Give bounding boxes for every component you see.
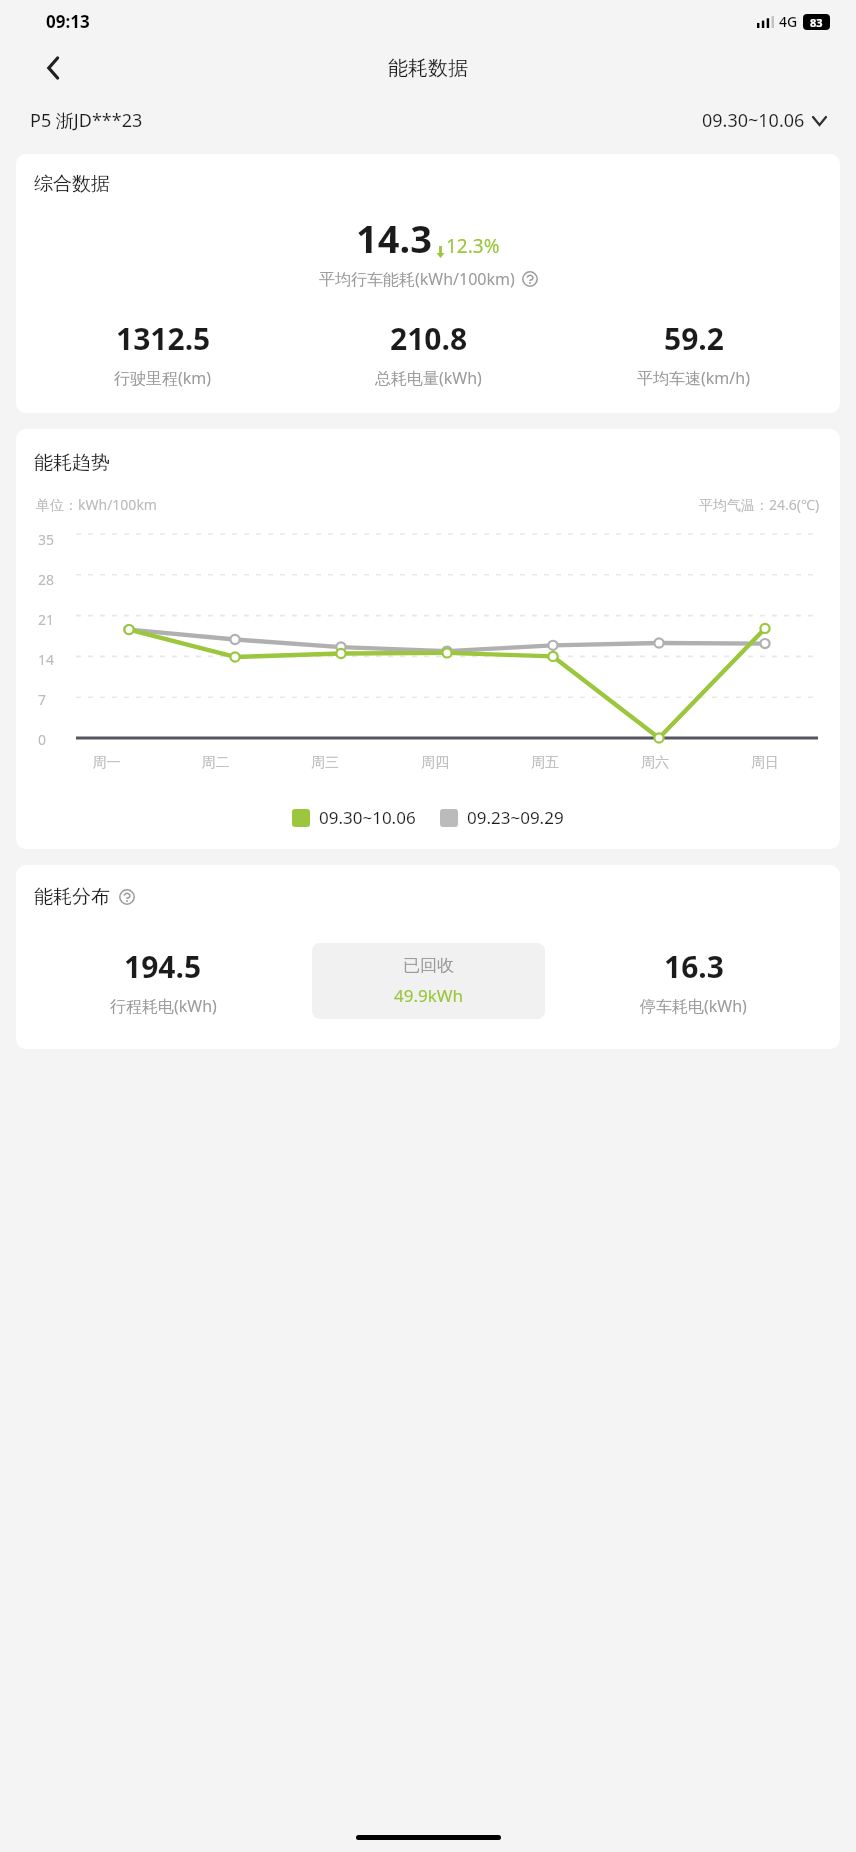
staticText: 周五 bbox=[490, 754, 600, 772]
staticText: 09.30~10.06 bbox=[702, 108, 805, 133]
button[interactable]: 能耗分布 bbox=[16, 865, 840, 1049]
staticText: 停车耗电(kWh) bbox=[640, 995, 747, 1017]
staticText: 能耗分布 bbox=[34, 885, 110, 909]
staticText: 21 bbox=[38, 610, 55, 629]
staticText: 0 bbox=[38, 730, 47, 748]
staticText: P5 浙JD***23 bbox=[30, 108, 143, 133]
staticText: 周三 bbox=[270, 754, 380, 772]
staticText: 平均气温：24.6(℃) bbox=[699, 495, 820, 514]
button[interactable]: Back bbox=[32, 46, 76, 90]
button[interactable]: 09.30~10.06 bbox=[702, 108, 826, 133]
button[interactable]: 综合数据 bbox=[16, 154, 840, 413]
staticText: 行程耗电(kWh) bbox=[110, 995, 217, 1017]
staticText: 总耗电量(kWh) bbox=[375, 367, 482, 389]
staticText: 周一 bbox=[52, 754, 161, 772]
staticText: 210.8 bbox=[390, 318, 468, 359]
staticText: 1312.5 bbox=[116, 318, 211, 359]
staticText: 35 bbox=[38, 530, 55, 549]
staticText: 单位：kWh/100km bbox=[36, 495, 157, 514]
staticText: 09.23~09.29 bbox=[467, 806, 564, 829]
staticText: 59.2 bbox=[664, 318, 724, 359]
staticText: 平均行车能耗(kWh/100km) bbox=[319, 268, 515, 290]
other: Help bbox=[119, 889, 135, 905]
staticText: 194.5 bbox=[124, 946, 202, 987]
staticText: 周四 bbox=[380, 754, 490, 772]
staticText: 平均车速(km/h) bbox=[637, 367, 750, 389]
staticText: 综合数据 bbox=[34, 172, 110, 196]
staticText: 周日 bbox=[710, 754, 820, 772]
staticText: 83 bbox=[810, 15, 823, 30]
staticText: 周二 bbox=[161, 754, 270, 772]
staticText: 12.3% bbox=[446, 233, 500, 259]
staticText: 4G bbox=[779, 12, 798, 31]
staticText: 09:13 bbox=[46, 10, 90, 33]
staticText: 14.3 bbox=[356, 212, 432, 264]
staticText: 16.3 bbox=[664, 946, 724, 987]
staticText: 周六 bbox=[600, 754, 710, 772]
staticText: 09.30~10.06 bbox=[319, 806, 416, 829]
staticText: 14 bbox=[38, 650, 55, 669]
staticText: 行驶里程(km) bbox=[114, 367, 212, 389]
staticText: 7 bbox=[38, 690, 47, 709]
staticText: 能耗趋势 bbox=[34, 451, 110, 475]
staticText: 能耗数据 bbox=[388, 56, 468, 81]
staticText: 已回收 bbox=[403, 955, 454, 976]
other: Help bbox=[522, 271, 538, 287]
staticText: 49.9kWh bbox=[394, 984, 464, 1007]
button[interactable]: 能耗趋势 bbox=[16, 429, 840, 849]
staticText: 28 bbox=[38, 570, 55, 589]
